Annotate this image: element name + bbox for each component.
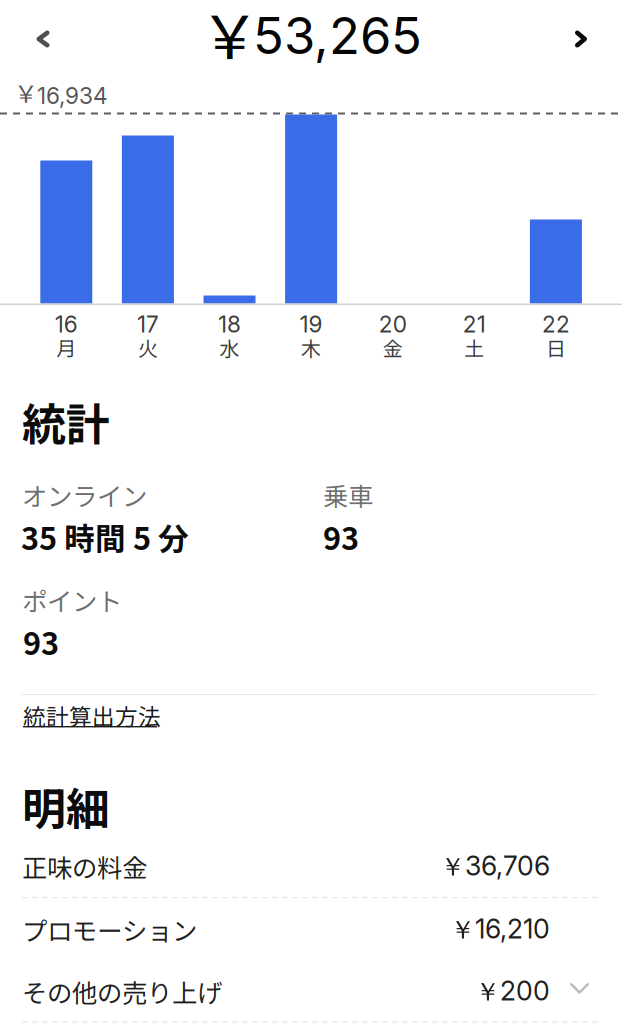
staticText: 乗車 xyxy=(323,476,373,513)
staticText: その他の売り上げ xyxy=(22,973,222,1010)
staticText: 16,934 xyxy=(37,82,108,109)
staticText: 17 xyxy=(137,310,159,338)
staticText: 日 xyxy=(546,333,566,362)
staticText: 20 xyxy=(379,310,407,338)
staticText: 木 xyxy=(301,333,321,362)
staticText: 18 xyxy=(218,310,241,338)
staticText: 正味の料金 xyxy=(22,848,147,885)
staticText: 21 xyxy=(463,310,486,338)
button[interactable]: Previous week xyxy=(9,8,77,70)
staticText: 統計算出方法 xyxy=(23,699,161,732)
staticText: ￥36,706 xyxy=(440,850,550,883)
staticText: ポイント xyxy=(22,581,122,618)
staticText: オンライン xyxy=(22,476,147,513)
button[interactable]: Next week xyxy=(547,8,615,70)
staticText: 53,265 xyxy=(253,5,422,66)
button[interactable]: プロモーション xyxy=(0,898,622,960)
staticText: 水 xyxy=(219,333,239,362)
staticText: 35 時間 5 分 xyxy=(21,514,189,559)
staticText: 22 xyxy=(542,310,570,338)
staticText: 土 xyxy=(464,333,484,362)
staticText: ￥ xyxy=(200,0,260,76)
staticText: 明細 xyxy=(22,774,110,838)
staticText: プロモーション xyxy=(22,911,197,948)
staticText: 月 xyxy=(56,333,76,362)
button[interactable]: その他の売り上げ xyxy=(0,960,622,1022)
staticText: 火 xyxy=(138,333,158,362)
staticText: 19 xyxy=(300,310,323,338)
staticText: ￥16,210 xyxy=(450,913,550,946)
button[interactable]: 正味の料金 xyxy=(0,835,622,897)
staticText: 金 xyxy=(383,333,403,362)
button[interactable]: 統計算出方法 xyxy=(23,699,173,733)
staticText: 93 xyxy=(323,514,359,559)
staticText: 93 xyxy=(23,619,59,664)
staticText: 16 xyxy=(55,310,78,338)
staticText: ￥200 xyxy=(475,975,550,1008)
staticText: 統計 xyxy=(22,389,110,453)
staticText: ￥ xyxy=(14,75,38,110)
